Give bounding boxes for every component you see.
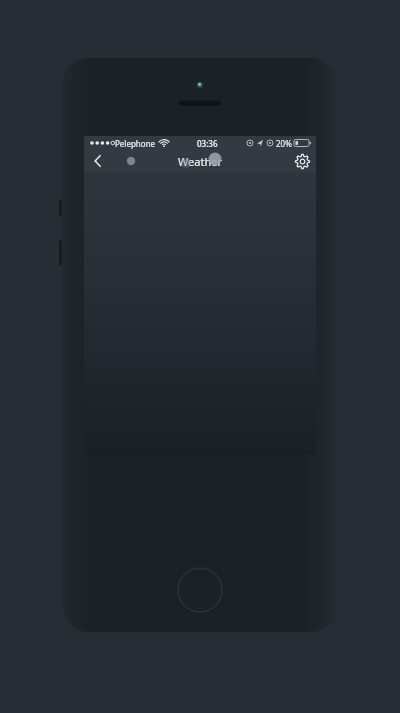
staticText: Pelephone	[115, 138, 156, 149]
staticText: 20%	[276, 138, 292, 149]
button[interactable]: Back	[87, 150, 109, 172]
staticText: 03:36	[197, 138, 218, 149]
staticText: Weather	[178, 154, 222, 169]
button[interactable]: Settings	[291, 150, 313, 172]
